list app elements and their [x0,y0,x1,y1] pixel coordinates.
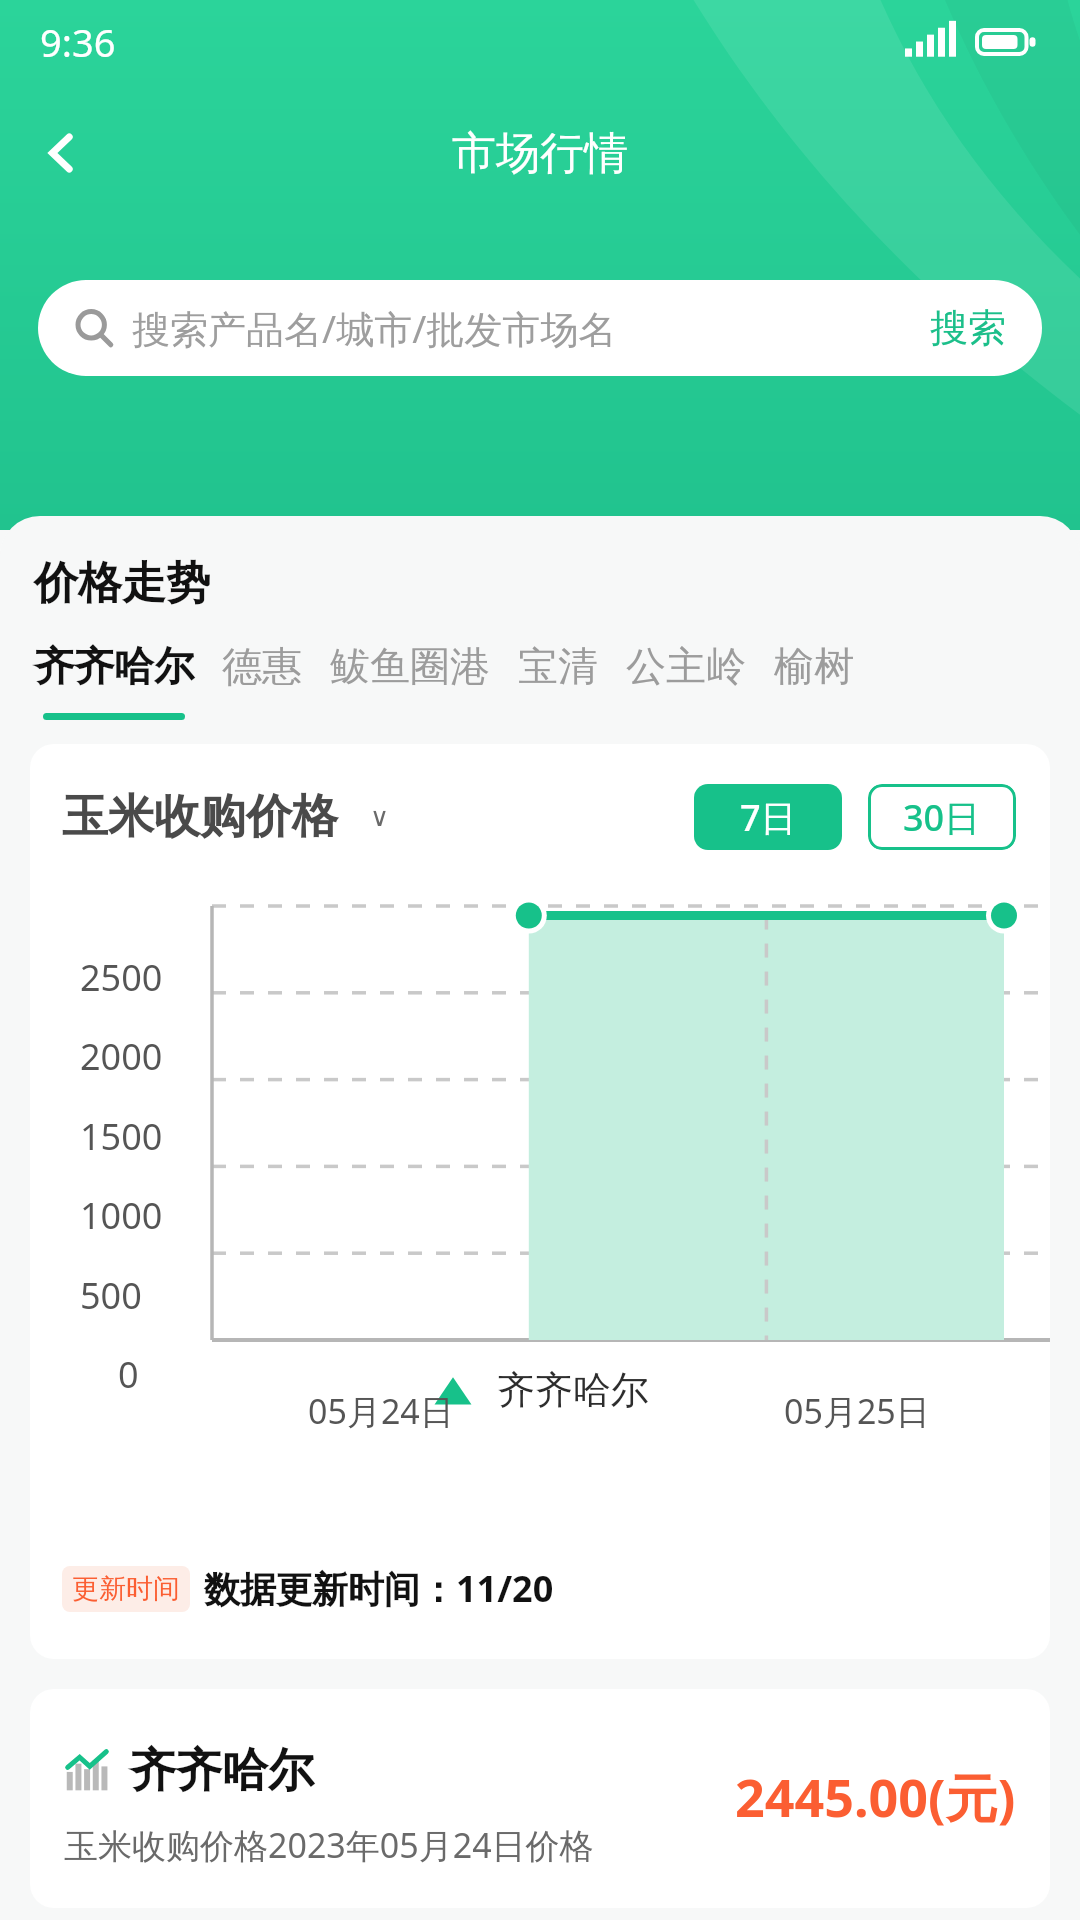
staticText: ∨ [370,802,390,832]
staticText: 鲅鱼圈港 [330,641,490,691]
staticText: 更新时间 [72,1572,180,1606]
button[interactable]: 7日 [694,784,842,850]
staticText: 0 [118,1350,139,1399]
button[interactable]: 宝清 [518,641,626,720]
staticText: 齐齐哈尔 [34,641,194,691]
staticText: 1000 [80,1191,163,1240]
staticText: 公主岭 [626,641,746,691]
staticText: 数据更新时间：11/20 [204,1564,554,1613]
button[interactable]: 公主岭 [626,641,774,720]
button[interactable]: 搜索 [930,304,1006,352]
button[interactable]: 返回 [18,109,106,197]
button[interactable]: 搜索产品名/城市/批发市场名 [38,280,1042,376]
staticText: 齐齐哈尔 [130,1742,314,1800]
staticText: 齐齐哈尔 [497,1366,649,1414]
staticText: 市场行情 [452,126,628,181]
button[interactable]: 30日 [868,784,1016,850]
staticText: 玉米收购价格2023年05月24日价格 [64,1822,594,1868]
staticText: 2445.00(元) [735,1761,1016,1832]
staticText: 宝清 [518,641,598,691]
staticText: 7日 [740,793,797,842]
button[interactable]: 榆树 [774,641,854,720]
staticText: 1500 [80,1112,163,1161]
button[interactable]: 齐齐哈尔 [30,1689,1050,1908]
staticText: 30日 [903,793,981,842]
staticText: 2500 [80,953,163,1002]
staticText: 2000 [80,1032,163,1081]
staticText: 搜索产品名/城市/批发市场名 [132,302,617,354]
staticText: 05月24日 [308,1388,454,1434]
button[interactable]: 德惠 [222,641,330,720]
button[interactable]: 玉米收购价格 [62,788,338,846]
staticText: 9:36 [40,16,116,68]
staticText: 价格走势 [34,556,210,611]
staticText: 德惠 [222,641,302,691]
staticText: 05月25日 [784,1388,930,1434]
button[interactable]: 齐齐哈尔 [34,641,222,720]
button[interactable]: 鲅鱼圈港 [330,641,518,720]
staticText: 榆树 [774,641,854,691]
staticText: 500 [80,1271,142,1320]
